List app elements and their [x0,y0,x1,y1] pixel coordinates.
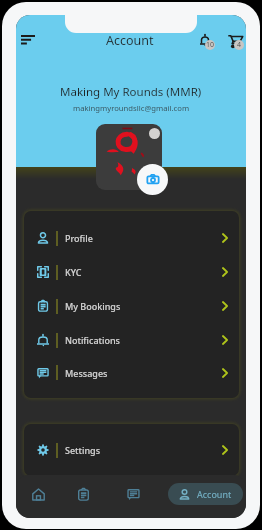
button[interactable]: Settings [24,433,239,467]
button[interactable]: Bookings [70,481,96,507]
button[interactable]: Change profile photo [137,164,168,195]
button[interactable]: Notifications [196,30,217,51]
staticText: Profile [65,232,93,244]
button[interactable]: Account [168,483,243,505]
staticText: Making My Rounds (MMR) [60,84,202,100]
button[interactable]: Profile [24,221,239,255]
button[interactable]: My Bookings [24,289,239,323]
button[interactable]: Messages [24,357,239,388]
staticText: My Bookings [65,300,121,312]
staticText: KYC [65,266,82,278]
staticText: Notifications [65,334,120,346]
button[interactable]: Messages [120,481,146,507]
button[interactable]: KYC [24,255,239,289]
button[interactable]: Menu [17,29,39,51]
staticText: Messages [65,367,108,379]
button[interactable]: Notifications [24,323,239,357]
staticText: Account [106,32,154,49]
staticText: 4 [237,40,242,50]
staticText: Settings [65,444,101,456]
staticText: makingmyroundsllc@gmail.com [73,103,190,113]
staticText: Account [197,488,232,500]
staticText: 10 [206,40,215,50]
button[interactable]: Cart [224,30,245,51]
button[interactable]: Home [25,481,51,507]
